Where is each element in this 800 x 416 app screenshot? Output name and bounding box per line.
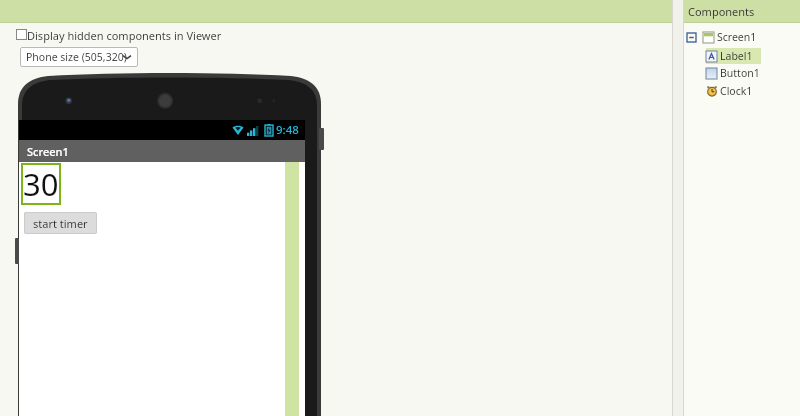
staticText: 9:48 xyxy=(276,122,299,138)
button[interactable]: Button1 xyxy=(706,66,760,80)
staticText: Phone size (505,320) xyxy=(26,50,127,64)
button[interactable]: start timer xyxy=(24,212,97,234)
button[interactable]: Collapse Screen1 xyxy=(687,30,757,44)
button[interactable]: Display hidden components in Viewer xyxy=(16,29,222,44)
staticText: start timer xyxy=(33,216,88,231)
staticText: 30 xyxy=(23,163,59,205)
button[interactable]: Phone size (505,320) xyxy=(20,47,138,67)
staticText: Screen1 xyxy=(27,144,69,159)
button[interactable]: Label1 xyxy=(706,49,753,63)
button[interactable]: 30 xyxy=(21,163,61,205)
staticText: Display hidden components in Viewer xyxy=(27,28,222,43)
staticText: Label1 xyxy=(720,49,753,63)
staticText: Button1 xyxy=(720,66,760,80)
button[interactable]: Collapse Screen1 xyxy=(687,33,696,42)
staticText: Clock1 xyxy=(720,84,753,98)
staticText: Screen1 xyxy=(717,30,757,44)
button[interactable]: Clock1 xyxy=(706,84,753,98)
staticText: Components xyxy=(688,4,755,19)
